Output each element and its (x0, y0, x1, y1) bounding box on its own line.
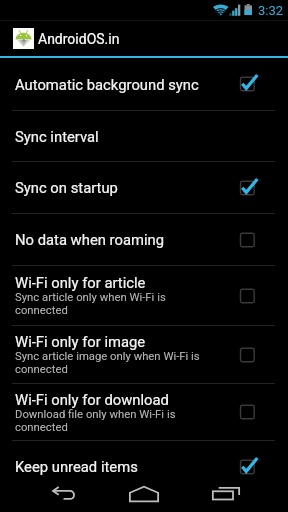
button[interactable]: No data when roaming (0, 214, 288, 265)
staticText: Sync article image only when Wi-Fi is co… (15, 350, 201, 376)
staticText: Keep unread items (15, 458, 138, 475)
button[interactable]: Recent apps (192, 475, 288, 512)
staticText: Wi-Fi only for article (15, 274, 146, 291)
button[interactable]: Toggle Wi-Fi only for article (226, 266, 270, 325)
button[interactable]: Sync interval (0, 111, 288, 161)
button[interactable]: Toggle Automatic background sync (226, 58, 270, 110)
button[interactable]: Toggle Wi-Fi only for download (226, 384, 270, 440)
button[interactable]: Automatic background sync (0, 58, 288, 110)
staticText: Automatic background sync (15, 76, 199, 93)
staticText: AndroidOS.in (38, 31, 120, 47)
button[interactable]: Toggle Wi-Fi only for image (226, 326, 270, 383)
staticText: Sync article only when Wi-Fi is connecte… (15, 291, 201, 317)
staticText: Sync on startup (15, 179, 118, 196)
staticText: Wi-Fi only for download (15, 391, 169, 408)
staticText: Sync interval (15, 128, 99, 145)
button[interactable]: Wi-Fi only for download (0, 384, 288, 440)
button[interactable]: Home (96, 475, 192, 512)
button[interactable]: Keep unread items (0, 441, 288, 492)
button[interactable]: Toggle No data when roaming (226, 214, 270, 265)
button[interactable]: Sync on startup (0, 162, 288, 213)
button[interactable]: Toggle Sync on startup (226, 162, 270, 213)
button[interactable]: Back (0, 475, 96, 512)
button[interactable]: Wi-Fi only for article (0, 266, 288, 325)
button[interactable]: Wi-Fi only for image (0, 326, 288, 383)
staticText: Wi-Fi only for image (15, 333, 146, 350)
staticText: No data when roaming (15, 231, 164, 248)
staticText: Download file only when Wi-Fi is connect… (15, 408, 201, 434)
button[interactable]: Toggle Keep unread items (226, 441, 270, 492)
staticText: 3:32 (258, 3, 284, 18)
